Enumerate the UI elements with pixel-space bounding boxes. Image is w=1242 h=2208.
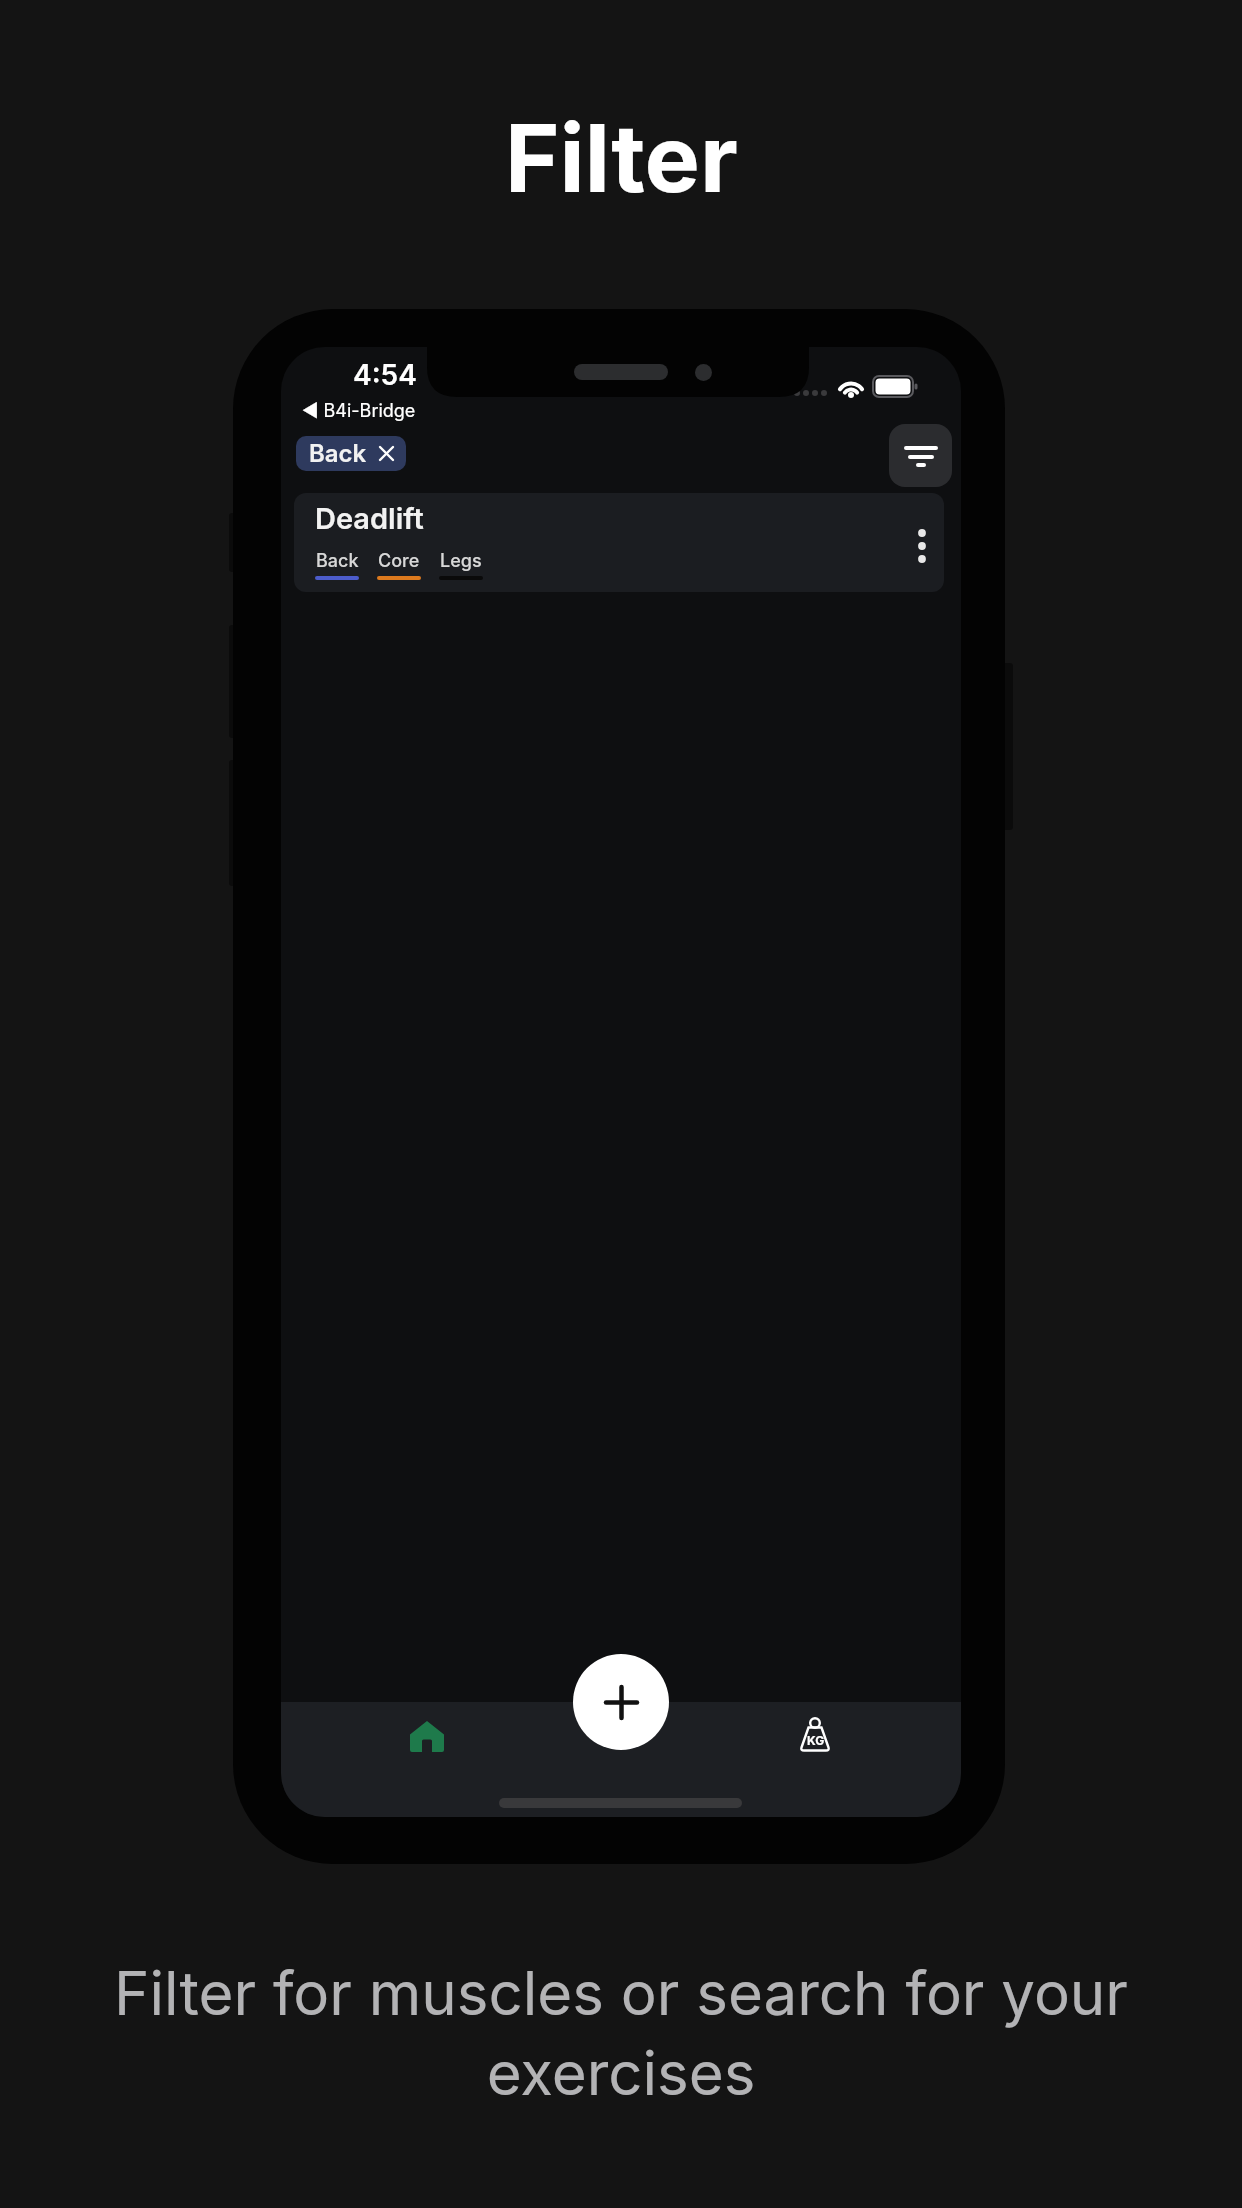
staticText: Filter for muscles or search for your ex… (0, 1957, 1242, 2110)
staticText: ◀ B4i-Bridge (302, 400, 416, 422)
staticText: 4:54 (353, 358, 417, 392)
button[interactable] (410, 1721, 444, 1752)
staticText: Filter (505, 102, 738, 215)
button[interactable] (889, 424, 952, 487)
button[interactable]: KG (798, 1717, 832, 1752)
staticText: KG (807, 1733, 825, 1748)
button[interactable]: Back (296, 436, 406, 471)
button[interactable]: Deadlift (294, 493, 944, 592)
staticText: Core (378, 550, 420, 572)
staticText: Back (309, 439, 367, 468)
staticText: Deadlift (315, 501, 424, 536)
staticText: Back (316, 550, 359, 572)
staticText: Legs (440, 550, 482, 572)
button[interactable] (573, 1654, 669, 1750)
